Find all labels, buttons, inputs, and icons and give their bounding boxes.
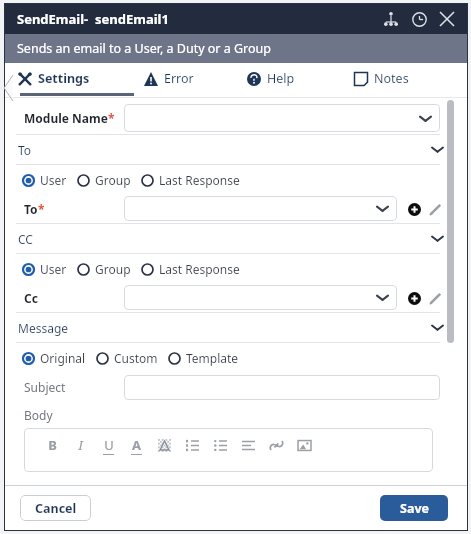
staticText: Subject	[24, 379, 124, 395]
button[interactable]: Last Response	[141, 172, 250, 188]
staticText: Message	[18, 320, 69, 336]
button[interactable]	[124, 196, 397, 221]
button[interactable]: Add	[405, 200, 423, 218]
button[interactable]: Template	[168, 350, 249, 366]
button[interactable]: U	[94, 431, 122, 459]
button[interactable]: Last Response	[141, 261, 250, 277]
staticText: Cc	[24, 290, 38, 306]
button[interactable]: A	[122, 431, 150, 459]
button[interactable]: Original	[22, 350, 96, 366]
button[interactable]: Numbered list	[178, 431, 206, 459]
staticText: I	[78, 436, 83, 454]
staticText: CC	[18, 231, 33, 247]
staticText: Help	[267, 70, 295, 87]
staticText: *	[38, 201, 45, 217]
button[interactable]: Settings	[4, 63, 122, 98]
staticText: Save	[400, 500, 429, 517]
button[interactable]: User	[22, 261, 77, 277]
staticText: Sends an email to a User, a Duty or a Gr…	[17, 40, 272, 57]
button[interactable]: Image	[290, 431, 318, 459]
staticText: Cancel	[35, 500, 77, 517]
staticText: User	[40, 261, 67, 277]
staticText: B	[48, 436, 57, 454]
button[interactable]	[124, 375, 440, 400]
staticText: User	[40, 172, 67, 188]
staticText: Custom	[114, 350, 158, 366]
staticText: To	[24, 201, 38, 217]
staticText: Error	[164, 70, 194, 87]
staticText: Group	[95, 172, 131, 188]
button[interactable]: To	[4, 135, 468, 164]
staticText: U	[104, 436, 114, 454]
button[interactable]: Save	[380, 495, 448, 521]
staticText: Settings	[38, 70, 90, 87]
staticText: Last Response	[159, 261, 240, 277]
button[interactable]: Notes	[336, 63, 436, 98]
button[interactable]: Bulleted list	[206, 431, 234, 459]
button[interactable]: Add	[405, 289, 423, 307]
button[interactable]: Group	[77, 172, 141, 188]
button[interactable]: B	[38, 431, 66, 459]
staticText: Template	[186, 350, 239, 366]
button[interactable]: Custom	[96, 350, 168, 366]
button[interactable]: Group	[77, 261, 141, 277]
staticText: Group	[95, 261, 131, 277]
button[interactable]: Close	[436, 8, 458, 30]
staticText: Module Name	[24, 110, 108, 126]
button[interactable]: Help	[229, 63, 336, 98]
button[interactable]	[124, 104, 440, 132]
staticText: Notes	[374, 70, 409, 87]
staticText: SendEmail- sendEmail1	[17, 10, 169, 28]
button[interactable]: Cancel	[20, 495, 91, 521]
button[interactable]: I	[66, 431, 94, 459]
button[interactable]: Edit	[426, 289, 444, 307]
button[interactable]	[124, 285, 397, 310]
button[interactable]: Align	[234, 431, 262, 459]
staticText: *	[108, 110, 115, 126]
button[interactable]: Message	[4, 313, 468, 342]
button[interactable]: Error	[122, 63, 229, 98]
button[interactable]: Highlight	[150, 431, 178, 459]
button[interactable]: Edit	[426, 200, 444, 218]
button[interactable]: History	[408, 8, 430, 30]
button[interactable]: User	[22, 172, 77, 188]
button[interactable]: Previous	[4, 75, 13, 101]
staticText: To	[18, 142, 32, 158]
staticText: Body	[24, 407, 53, 423]
button[interactable]: Hierarchy	[380, 8, 402, 30]
button[interactable]: CC	[4, 224, 468, 253]
staticText: A	[132, 436, 141, 454]
staticText: Original	[40, 350, 86, 366]
button[interactable]: Link	[262, 431, 290, 459]
staticText: Last Response	[159, 172, 240, 188]
